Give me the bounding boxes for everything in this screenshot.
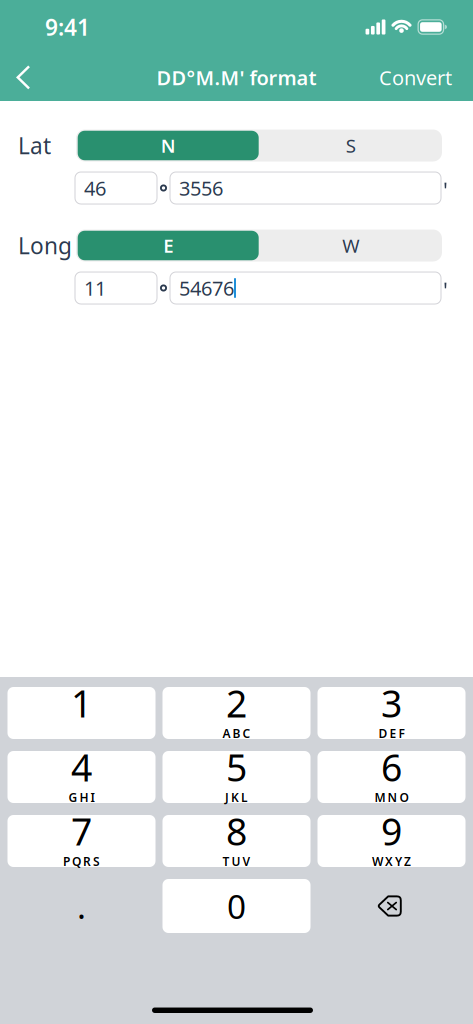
button[interactable]: 3556 bbox=[170, 172, 441, 204]
staticText: P Q R S bbox=[63, 853, 100, 869]
staticText: G H I bbox=[68, 789, 94, 805]
staticText: 9:41 bbox=[45, 12, 90, 42]
staticText: 6 bbox=[381, 742, 402, 792]
button[interactable]: 7 bbox=[7, 815, 155, 867]
staticText: DD°M.M' format bbox=[156, 64, 316, 91]
staticText: 5 bbox=[226, 742, 247, 792]
staticText: 7 bbox=[71, 806, 92, 856]
button[interactable]: 8 bbox=[162, 815, 310, 867]
staticText: 54676 bbox=[179, 275, 234, 301]
staticText: J K L bbox=[225, 789, 248, 805]
button[interactable]: Back bbox=[0, 54, 46, 101]
button[interactable]: 1 bbox=[7, 687, 155, 739]
staticText: 11 bbox=[84, 275, 106, 301]
staticText: 8 bbox=[226, 806, 247, 856]
button[interactable]: 3 bbox=[317, 687, 465, 739]
staticText: E bbox=[163, 233, 173, 258]
button[interactable]: Convert bbox=[365, 54, 473, 101]
staticText: D E F bbox=[378, 725, 404, 741]
button[interactable]: 5 bbox=[162, 751, 310, 803]
button[interactable]: S bbox=[260, 129, 441, 161]
button[interactable]: 4 bbox=[7, 751, 155, 803]
staticText: T U V bbox=[222, 853, 250, 869]
staticText: 46 bbox=[84, 175, 106, 201]
staticText: W X Y Z bbox=[372, 853, 411, 869]
staticText: 2 bbox=[226, 678, 247, 728]
button[interactable]: 6 bbox=[317, 751, 465, 803]
button[interactable]: 0 bbox=[162, 879, 310, 933]
staticText: 0 bbox=[227, 884, 246, 928]
button[interactable]: W bbox=[260, 229, 441, 261]
staticText: S bbox=[346, 133, 356, 158]
button[interactable]: 54676 bbox=[170, 272, 441, 304]
staticText bbox=[80, 725, 83, 741]
staticText: 3556 bbox=[179, 175, 223, 201]
button[interactable]: E bbox=[76, 230, 260, 261]
staticText: 4 bbox=[71, 742, 92, 792]
staticText: 3 bbox=[381, 678, 402, 728]
button[interactable]: 2 bbox=[162, 687, 310, 739]
button[interactable]: 46 bbox=[75, 172, 157, 204]
button[interactable]: . bbox=[7, 879, 155, 933]
staticText: Lat bbox=[18, 130, 51, 160]
staticText: N bbox=[161, 133, 176, 158]
staticText: 1 bbox=[71, 678, 92, 728]
button[interactable]: Delete bbox=[317, 879, 465, 933]
button[interactable]: 9 bbox=[317, 815, 465, 867]
staticText: A B C bbox=[222, 725, 250, 741]
button[interactable]: 11 bbox=[75, 272, 157, 304]
staticText: Long bbox=[18, 230, 72, 260]
staticText: 9 bbox=[381, 806, 402, 856]
staticText: W bbox=[342, 233, 359, 258]
staticText: Convert bbox=[379, 64, 452, 91]
button[interactable]: N bbox=[76, 130, 260, 161]
staticText: . bbox=[77, 884, 86, 928]
staticText: M N O bbox=[374, 789, 408, 805]
